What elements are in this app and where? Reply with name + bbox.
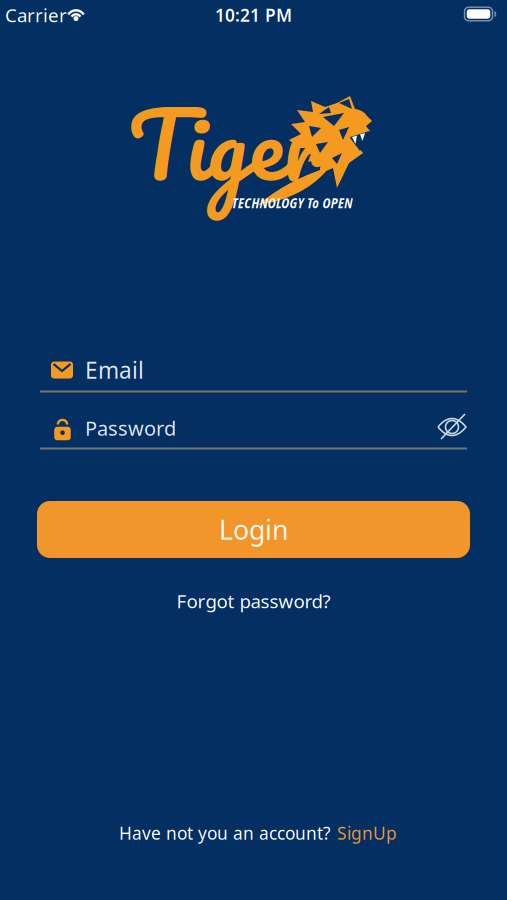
button[interactable]: SignUp [337, 821, 397, 844]
button[interactable]: Forgot password? [168, 581, 338, 621]
staticText: Password [85, 415, 176, 441]
staticText: 10:21 PM [215, 3, 292, 26]
staticText: Login [219, 512, 288, 547]
staticText: Email [85, 355, 144, 385]
staticText: Have not you an account? [119, 821, 331, 844]
button[interactable]: Login [37, 501, 470, 558]
staticText: Carrier [5, 3, 67, 27]
staticText: TECHNOLOGY To OPEN [232, 194, 352, 212]
button[interactable]: Password [40, 410, 467, 446]
staticText: SignUp [337, 821, 397, 844]
staticText: Tiger [128, 68, 326, 220]
button[interactable]: Show password [430, 407, 474, 447]
button[interactable]: Email [40, 353, 467, 387]
staticText: Forgot password? [176, 589, 330, 613]
